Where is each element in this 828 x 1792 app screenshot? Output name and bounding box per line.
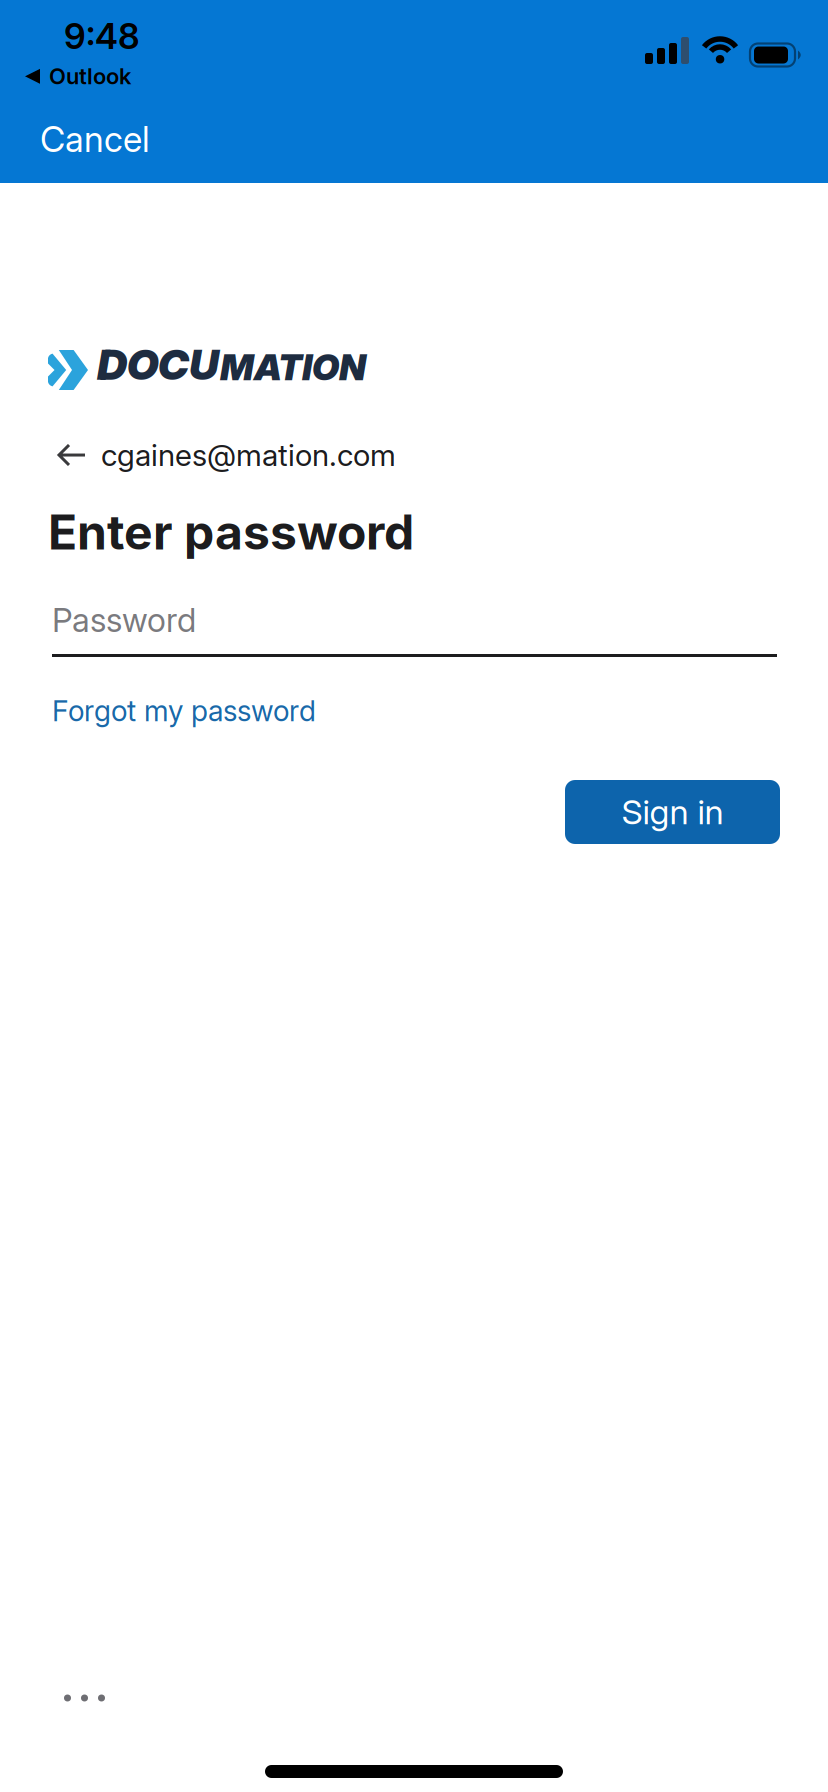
staticText: Sign in	[621, 791, 723, 832]
staticText: Outlook	[49, 63, 131, 90]
button[interactable]: Sign in	[565, 780, 780, 844]
staticText: Cancel	[40, 118, 150, 160]
staticText: Password	[52, 600, 196, 640]
button[interactable]: Cancel	[40, 118, 150, 160]
button[interactable]: Outlook	[25, 63, 131, 90]
staticText: Enter password	[48, 503, 414, 561]
staticText: cgaines@mation.com	[101, 437, 396, 473]
staticText: Forgot my password	[52, 694, 316, 728]
staticText: DOCU	[97, 339, 219, 390]
button[interactable]: More options	[64, 1694, 105, 1702]
button[interactable]: Password	[48, 602, 777, 657]
button[interactable]: Forgot my password	[52, 695, 316, 727]
staticText: 9:48	[64, 15, 140, 57]
staticText: MATION	[220, 345, 366, 389]
button[interactable]: Back	[48, 440, 396, 470]
